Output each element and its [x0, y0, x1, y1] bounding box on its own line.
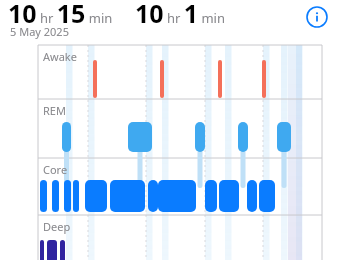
staticText: Deep [43, 219, 71, 234]
staticText: REM [43, 103, 66, 118]
button[interactable]: 10 hr 1 min [135, 0, 225, 30]
button[interactable]: 10 hr 15 min [8, 0, 113, 30]
staticText: 5 May 2025 [10, 24, 69, 39]
staticText: Awake [43, 49, 77, 64]
staticText: Core [43, 162, 68, 177]
button[interactable]: Info [306, 6, 328, 28]
